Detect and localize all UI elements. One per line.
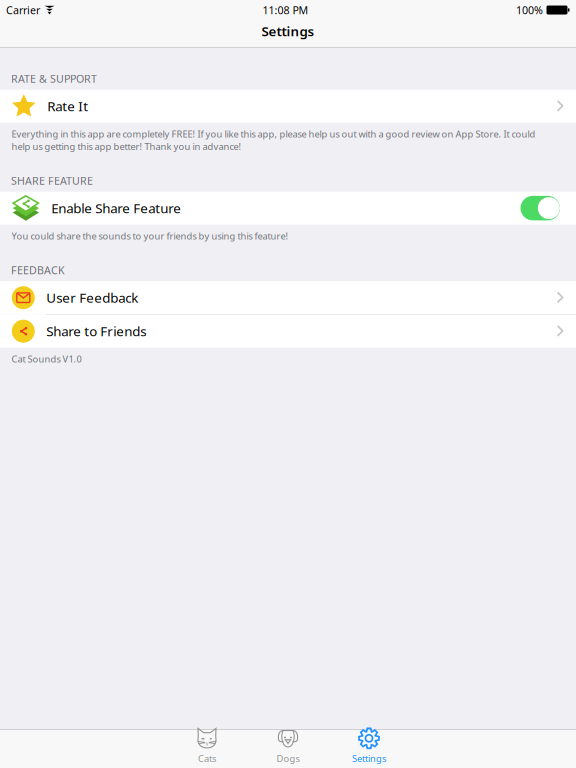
staticText: Enable Share Feature	[51, 199, 181, 217]
button[interactable]: Cats	[166, 730, 247, 768]
staticText: 11:08 PM	[262, 3, 308, 17]
staticText: Cat Sounds V1.0	[11, 353, 81, 365]
button[interactable]: Dogs	[247, 730, 328, 768]
button[interactable]: Enable Share Feature	[520, 196, 560, 220]
staticText: Cats	[198, 752, 216, 765]
staticText: User Feedback	[46, 289, 138, 306]
button[interactable]: Rate It	[0, 90, 576, 123]
staticText: Everything in this app are completely FR…	[11, 128, 535, 152]
staticText: Settings	[352, 752, 386, 765]
staticText: Rate It	[47, 97, 88, 115]
staticText: RATE & SUPPORT	[11, 71, 97, 86]
button[interactable]: Settings	[328, 730, 409, 768]
staticText: Dogs	[276, 752, 299, 765]
staticText: Settings	[261, 22, 314, 40]
staticText: Share to Friends	[46, 322, 146, 340]
staticText: 100%	[516, 3, 543, 17]
staticText: You could share the sounds to your frien…	[11, 230, 288, 242]
button[interactable]: User Feedback	[0, 281, 576, 314]
staticText: SHARE FEATURE	[11, 173, 93, 188]
staticText: FEEDBACK	[11, 263, 65, 277]
button[interactable]: Share to Friends	[0, 315, 576, 348]
staticText: Carrier	[6, 3, 40, 17]
